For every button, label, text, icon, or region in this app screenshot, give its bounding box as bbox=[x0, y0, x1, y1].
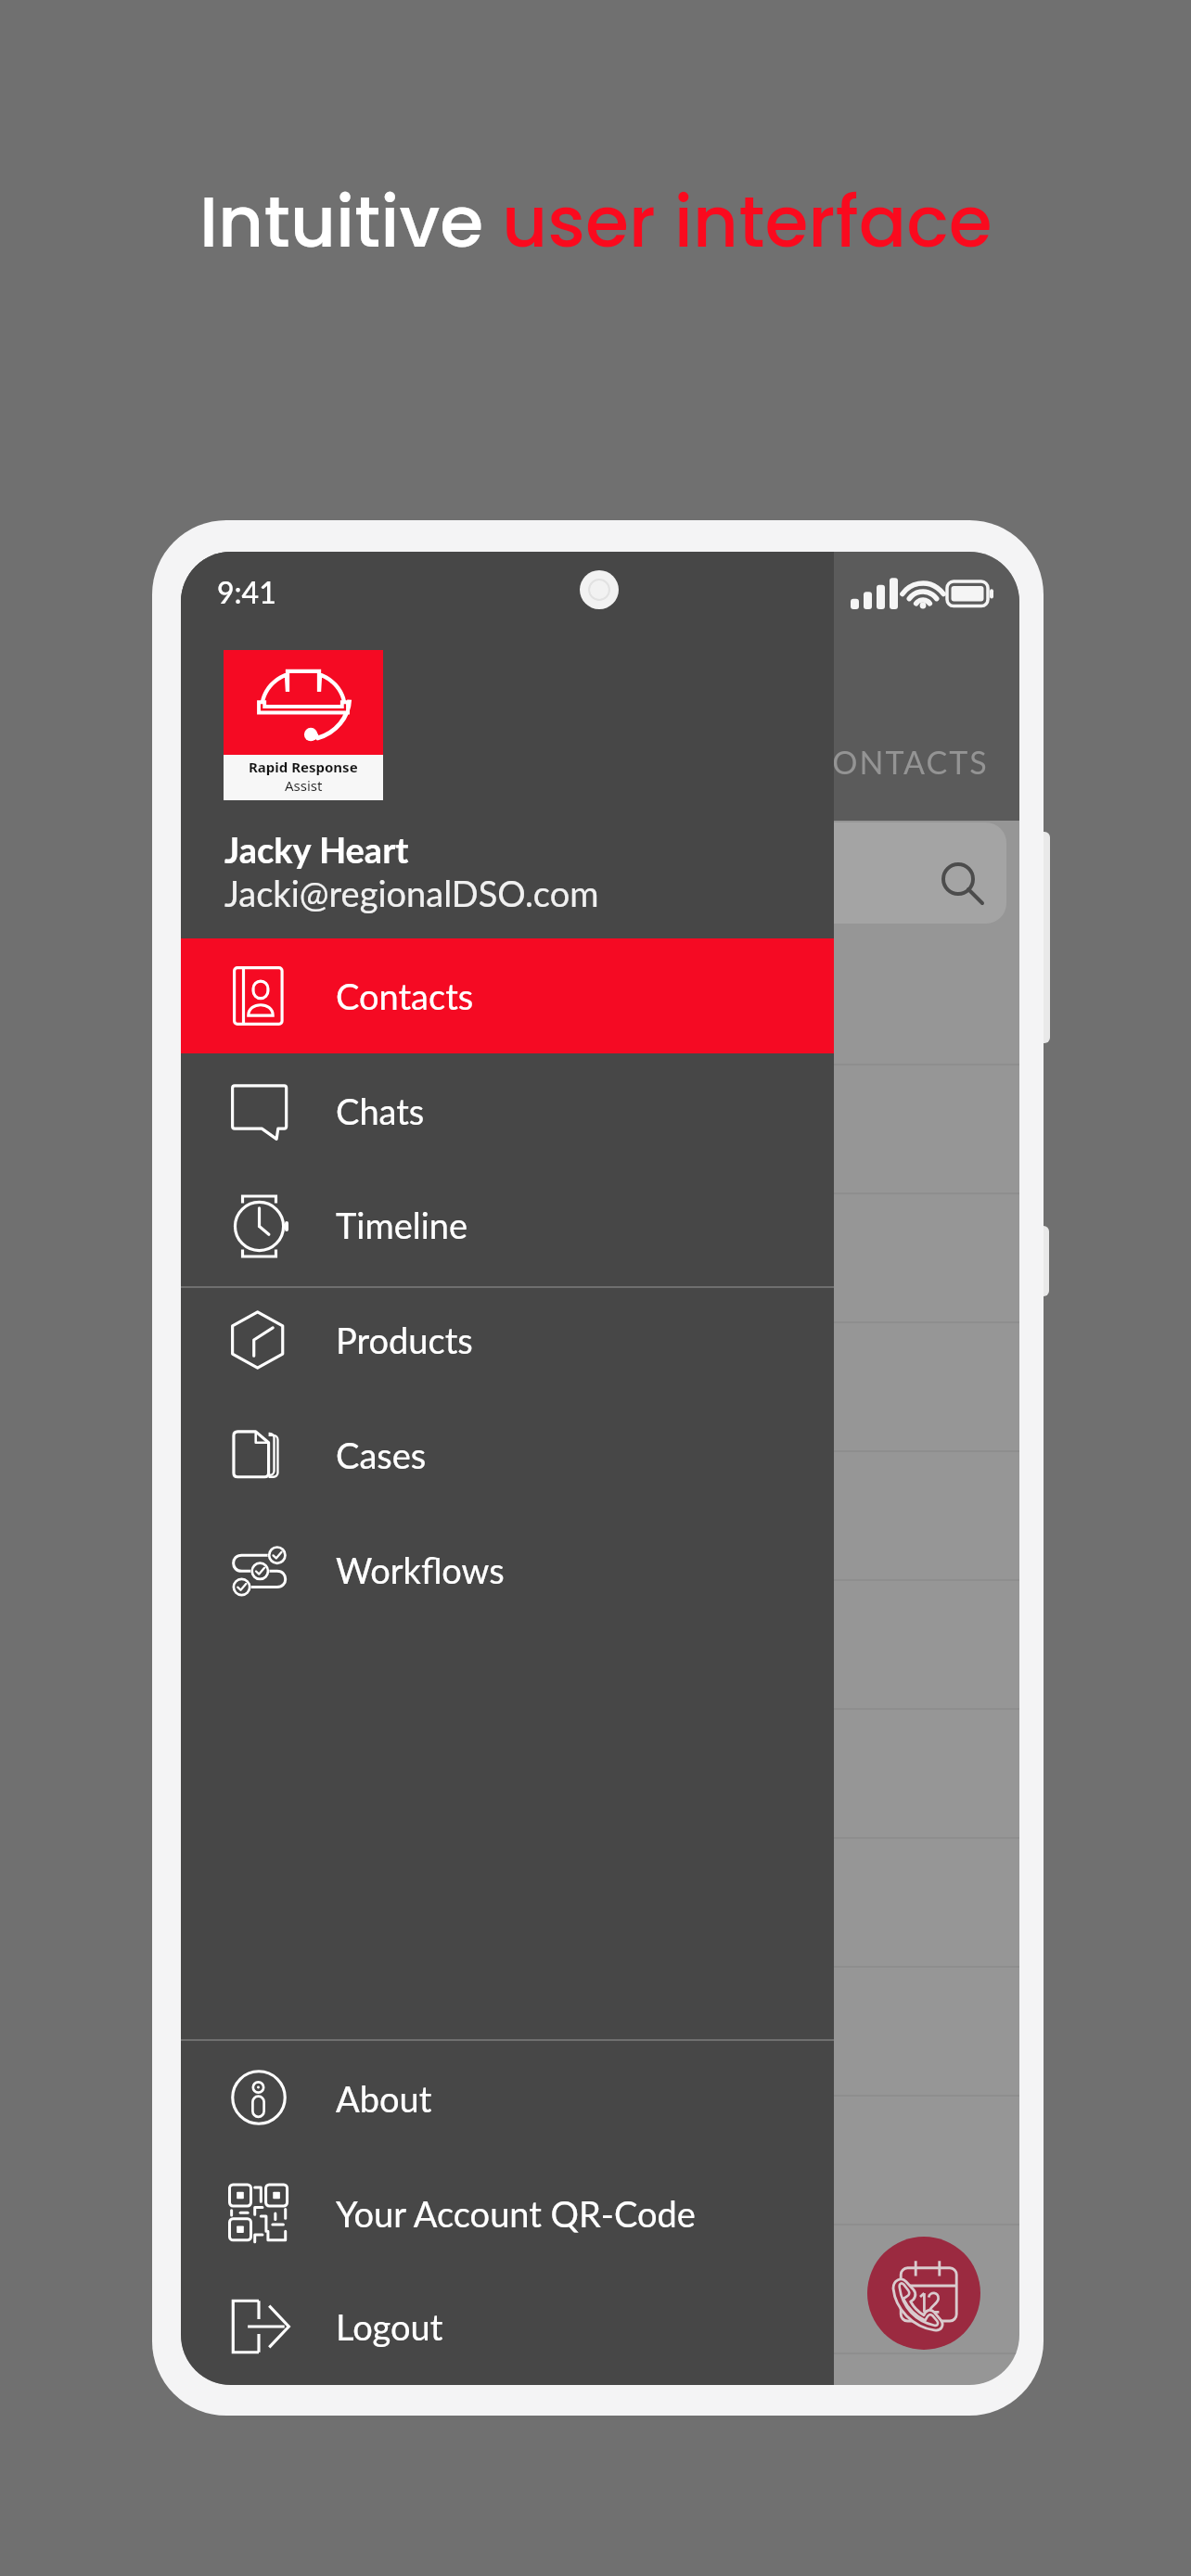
button[interactable]: Workflows bbox=[181, 1512, 834, 1627]
staticText: Jacky Heart bbox=[224, 828, 409, 871]
staticText: Timeline bbox=[336, 1204, 468, 1246]
staticText: About bbox=[336, 2077, 432, 2120]
staticText: Cases bbox=[336, 1434, 427, 1476]
button[interactable]: Timeline bbox=[181, 1167, 834, 1282]
button[interactable]: Chats bbox=[181, 1053, 834, 1168]
button[interactable]: Logout bbox=[181, 2269, 834, 2384]
staticText: Chats bbox=[336, 1090, 425, 1132]
button[interactable]: Contacts bbox=[181, 938, 834, 1053]
staticText: Logout bbox=[336, 2305, 443, 2348]
button[interactable]: About bbox=[181, 2041, 834, 2156]
staticText: Assist bbox=[285, 776, 323, 795]
staticText: Workflows bbox=[336, 1549, 505, 1591]
staticText: Intuitive bbox=[199, 172, 502, 271]
staticText: CONTACTS bbox=[810, 743, 989, 781]
staticText: user interface bbox=[502, 172, 992, 271]
button[interactable]: Search bbox=[181, 823, 1006, 924]
staticText: 9:41 bbox=[217, 574, 276, 609]
button[interactable]: Cases bbox=[181, 1397, 834, 1512]
button[interactable]: Rapid Response Assist bbox=[224, 650, 383, 800]
staticText: Contacts bbox=[336, 975, 474, 1017]
staticText: Products bbox=[336, 1319, 473, 1361]
staticText: Rapid Response bbox=[249, 758, 358, 776]
button[interactable]: Schedule a call bbox=[867, 2237, 980, 2350]
button[interactable]: Products bbox=[181, 1282, 834, 1397]
button[interactable]: Your Account QR-Code bbox=[181, 2156, 834, 2271]
staticText: Your Account QR-Code bbox=[336, 2192, 696, 2235]
staticText: Jacki@regionalDSO.com bbox=[224, 872, 599, 914]
